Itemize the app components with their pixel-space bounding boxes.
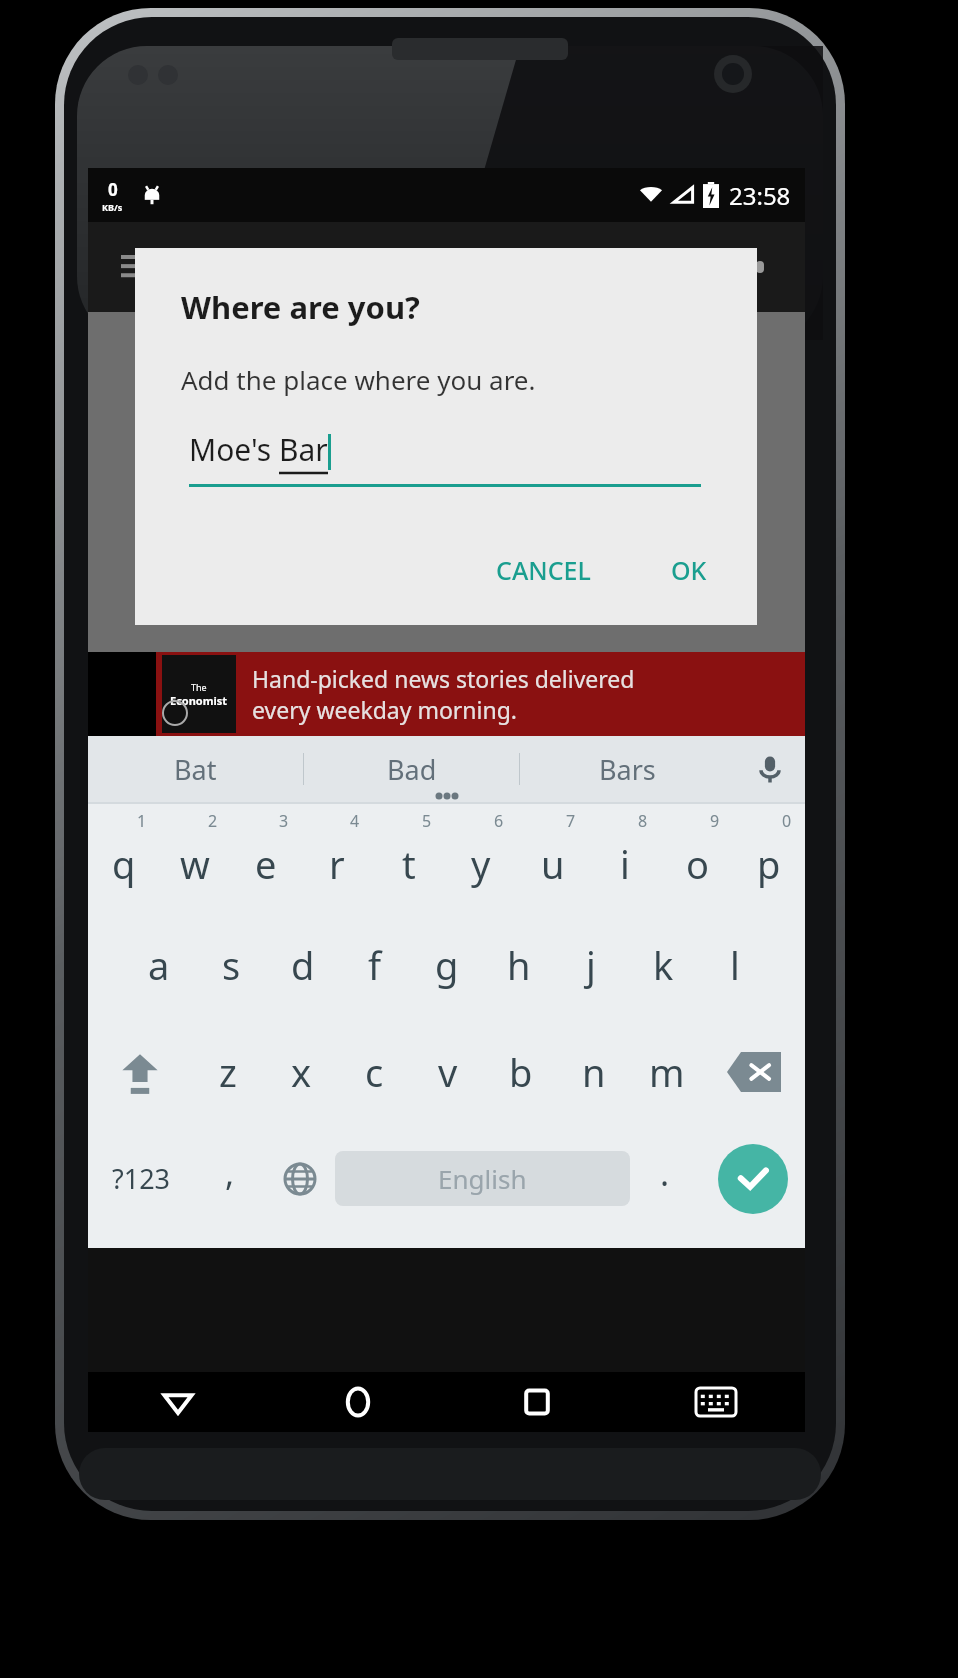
button[interactable]: l bbox=[699, 911, 771, 1018]
staticText: Bad bbox=[387, 751, 437, 788]
staticText: 4 bbox=[350, 810, 360, 832]
staticText: English bbox=[438, 1161, 527, 1196]
button[interactable]: Recents bbox=[447, 1372, 626, 1432]
button[interactable]: Bat bbox=[88, 736, 303, 802]
button[interactable]: 7 bbox=[517, 804, 589, 911]
button[interactable]: Add bbox=[587, 241, 639, 293]
button[interactable]: h bbox=[483, 911, 555, 1018]
staticText: i bbox=[620, 838, 630, 890]
button[interactable]: d bbox=[267, 911, 339, 1018]
button[interactable]: v bbox=[411, 1018, 484, 1125]
staticText: d bbox=[291, 939, 315, 991]
button[interactable]: ?123 bbox=[88, 1125, 194, 1232]
button[interactable]: g bbox=[411, 911, 483, 1018]
staticText: p bbox=[757, 838, 781, 890]
button[interactable]: z bbox=[191, 1018, 265, 1125]
staticText: Add the place where you are. bbox=[181, 362, 536, 397]
staticText: 6 bbox=[494, 810, 504, 832]
button[interactable]: Menu bbox=[110, 244, 156, 290]
staticText: CANCEL bbox=[496, 553, 591, 587]
button[interactable]: Change language bbox=[265, 1125, 335, 1232]
staticText: Bat bbox=[174, 751, 217, 788]
staticText: k bbox=[653, 939, 674, 991]
staticText: KB/s bbox=[102, 201, 123, 213]
button[interactable]: 2 bbox=[159, 804, 230, 911]
button[interactable]: Keyboard bbox=[626, 1372, 805, 1432]
button[interactable]: OK bbox=[655, 543, 723, 597]
staticText: x bbox=[291, 1046, 312, 1098]
staticText: ?123 bbox=[112, 1160, 171, 1197]
staticText: 3 bbox=[279, 810, 289, 832]
button[interactable]: 0 bbox=[733, 804, 805, 911]
staticText: 5 bbox=[422, 810, 432, 832]
button[interactable]: n bbox=[557, 1018, 630, 1125]
staticText: 0 bbox=[108, 178, 118, 201]
button[interactable]: f bbox=[339, 911, 411, 1018]
staticText: z bbox=[219, 1046, 237, 1098]
staticText: j bbox=[586, 939, 596, 991]
staticText: o bbox=[686, 838, 709, 890]
staticText: , bbox=[225, 1150, 235, 1196]
staticText: q bbox=[112, 838, 136, 890]
button[interactable]: s bbox=[195, 911, 267, 1018]
button[interactable]: 6 bbox=[445, 804, 517, 911]
staticText: y bbox=[471, 838, 491, 890]
staticText: w bbox=[180, 838, 210, 890]
button[interactable]: 5 bbox=[373, 804, 445, 911]
staticText: Bars bbox=[599, 751, 656, 788]
button[interactable]: Bad bbox=[304, 736, 519, 802]
staticText: 9 bbox=[710, 810, 720, 832]
button[interactable]: Backspace bbox=[703, 1018, 805, 1125]
button[interactable]: More options bbox=[737, 244, 783, 290]
button[interactable]: k bbox=[627, 911, 699, 1018]
button[interactable]: 3 bbox=[230, 804, 301, 911]
staticText: OK bbox=[671, 553, 707, 587]
staticText: Moe's bbox=[189, 429, 279, 470]
button[interactable]: Receipt bbox=[665, 241, 717, 293]
button[interactable]: Home bbox=[268, 1372, 447, 1432]
staticText: m bbox=[649, 1046, 685, 1098]
button[interactable]: a bbox=[122, 911, 195, 1018]
staticText: every weekday morning. bbox=[252, 694, 518, 725]
staticText: Economist bbox=[170, 693, 228, 708]
staticText: . bbox=[660, 1150, 670, 1196]
button[interactable]: 8 bbox=[589, 804, 661, 911]
staticText: 0 bbox=[782, 810, 792, 832]
staticText: c bbox=[365, 1046, 384, 1098]
button[interactable]: Back bbox=[88, 1372, 268, 1432]
staticText: h bbox=[507, 939, 531, 991]
button[interactable]: Shift bbox=[88, 1018, 191, 1125]
button[interactable]: m bbox=[630, 1018, 703, 1125]
button[interactable]: Voice input bbox=[735, 736, 805, 802]
button[interactable]: CANCEL bbox=[480, 543, 607, 597]
staticText: 2 bbox=[208, 810, 218, 832]
staticText: 7 bbox=[566, 810, 576, 832]
staticText: 8 bbox=[638, 810, 648, 832]
button[interactable]: j bbox=[555, 911, 627, 1018]
staticText: Hand-picked news stories delivered bbox=[252, 663, 635, 694]
button[interactable]: c bbox=[338, 1018, 411, 1125]
button[interactable]: Enter bbox=[700, 1125, 805, 1232]
button[interactable]: x bbox=[265, 1018, 338, 1125]
button[interactable]: , bbox=[194, 1125, 265, 1232]
staticText: n bbox=[582, 1046, 606, 1098]
staticText: s bbox=[222, 939, 241, 991]
button[interactable]: 9 bbox=[661, 804, 733, 911]
button[interactable]: Bars bbox=[520, 736, 735, 802]
button[interactable]: 4 bbox=[301, 804, 373, 911]
staticText: 23:58 bbox=[729, 179, 791, 212]
staticText: t bbox=[402, 838, 416, 890]
staticText: Bar bbox=[279, 429, 328, 470]
staticText: The bbox=[191, 681, 207, 693]
staticText: Where are you? bbox=[181, 286, 420, 328]
staticText: f bbox=[368, 939, 382, 991]
staticText: g bbox=[435, 939, 459, 991]
button[interactable]: English bbox=[335, 1151, 630, 1206]
button[interactable]: b bbox=[484, 1018, 557, 1125]
button[interactable]: . bbox=[630, 1125, 700, 1232]
staticText: r bbox=[329, 838, 345, 890]
staticText: a bbox=[148, 939, 170, 991]
staticText: 1 bbox=[137, 810, 147, 832]
button[interactable]: 1 bbox=[88, 804, 159, 911]
